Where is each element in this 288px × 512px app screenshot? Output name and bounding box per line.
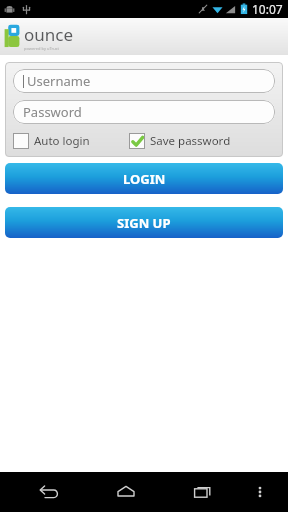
button[interactable]: SIGN UP — [5, 207, 283, 238]
staticText: Auto login — [34, 133, 90, 149]
staticText: Password — [23, 103, 82, 121]
button[interactable]: Username — [13, 69, 275, 93]
button[interactable]: Save password — [129, 132, 275, 150]
button[interactable]: Home — [104, 472, 148, 512]
button[interactable]: Auto login — [13, 132, 129, 150]
button[interactable]: LOGIN — [5, 163, 283, 194]
button[interactable]: More options — [243, 475, 277, 509]
staticText: 10:07 — [252, 1, 283, 17]
staticText: powered by uTrust — [24, 46, 59, 51]
button[interactable]: Back — [27, 472, 71, 512]
staticText: ounce — [24, 23, 74, 46]
staticText: Username — [27, 72, 91, 90]
button[interactable]: Recent apps — [181, 472, 225, 512]
button[interactable]: Password — [13, 100, 275, 124]
staticText: SIGN UP — [117, 214, 171, 232]
staticText: Save password — [150, 133, 231, 149]
staticText: LOGIN — [123, 170, 166, 188]
